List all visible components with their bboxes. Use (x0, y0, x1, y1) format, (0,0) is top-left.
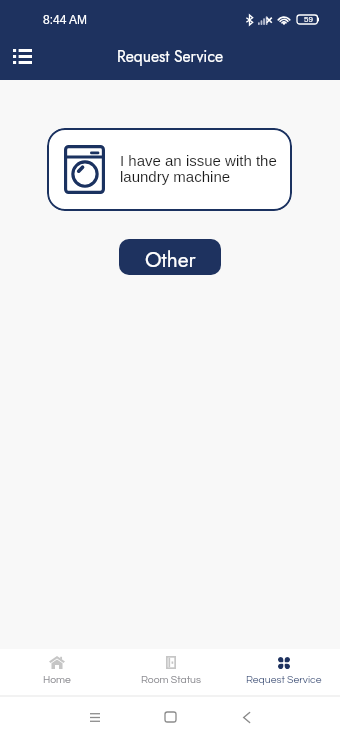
button[interactable]: Recents (83, 705, 107, 729)
button[interactable]: Room Status (114, 649, 227, 695)
button[interactable]: Other (119, 239, 221, 275)
button[interactable]: Back (234, 705, 258, 729)
staticText: Other (145, 245, 196, 275)
staticText: 8:44 AM (43, 13, 88, 26)
staticText: Room Status (141, 674, 201, 685)
button[interactable]: Home (158, 705, 182, 729)
staticText: Request Service (117, 45, 224, 68)
button[interactable]: Home (0, 649, 114, 695)
button[interactable]: Request Service (227, 649, 340, 695)
staticText: 59 (304, 15, 313, 24)
staticText: I have an issue with the laundry machine (120, 152, 284, 185)
button[interactable]: Menu (2, 34, 42, 78)
button[interactable]: I have an issue with the laundry machine (47, 128, 292, 211)
staticText: Request Service (246, 674, 322, 685)
staticText: Home (43, 674, 71, 685)
